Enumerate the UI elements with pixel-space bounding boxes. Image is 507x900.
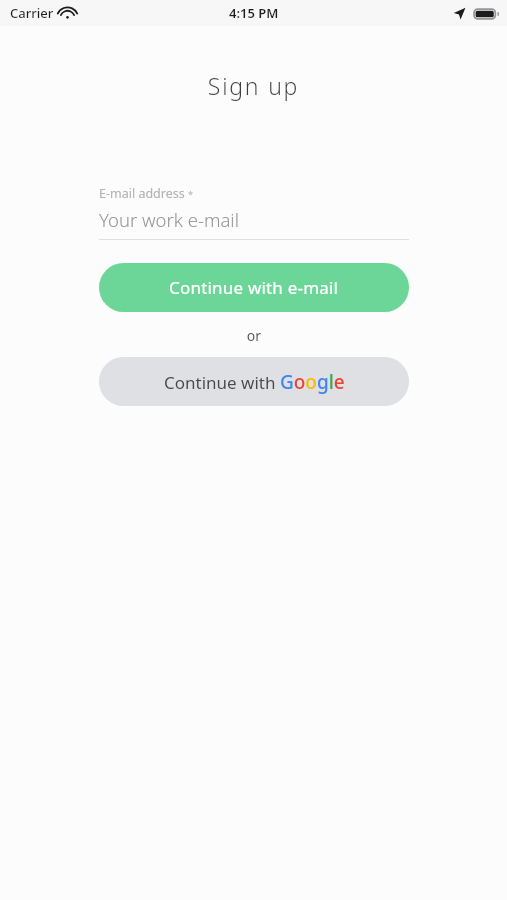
staticText: Your work e-mail [99, 207, 239, 232]
staticText: 4:15 PM [229, 4, 279, 22]
other: Location [453, 7, 466, 20]
button[interactable]: Continue with Google [99, 357, 409, 406]
staticText: Continue with e-mail [169, 276, 339, 299]
button[interactable]: Your work e-mail [99, 207, 409, 240]
staticText: Carrier [10, 4, 54, 22]
button[interactable]: Continue with e-mail [99, 263, 409, 312]
staticText: Sign up [0, 70, 507, 101]
staticText: Continue with Google [164, 369, 345, 395]
staticText: E-mail address * [99, 185, 193, 202]
staticText: or [99, 326, 409, 345]
other: Battery [473, 8, 499, 20]
